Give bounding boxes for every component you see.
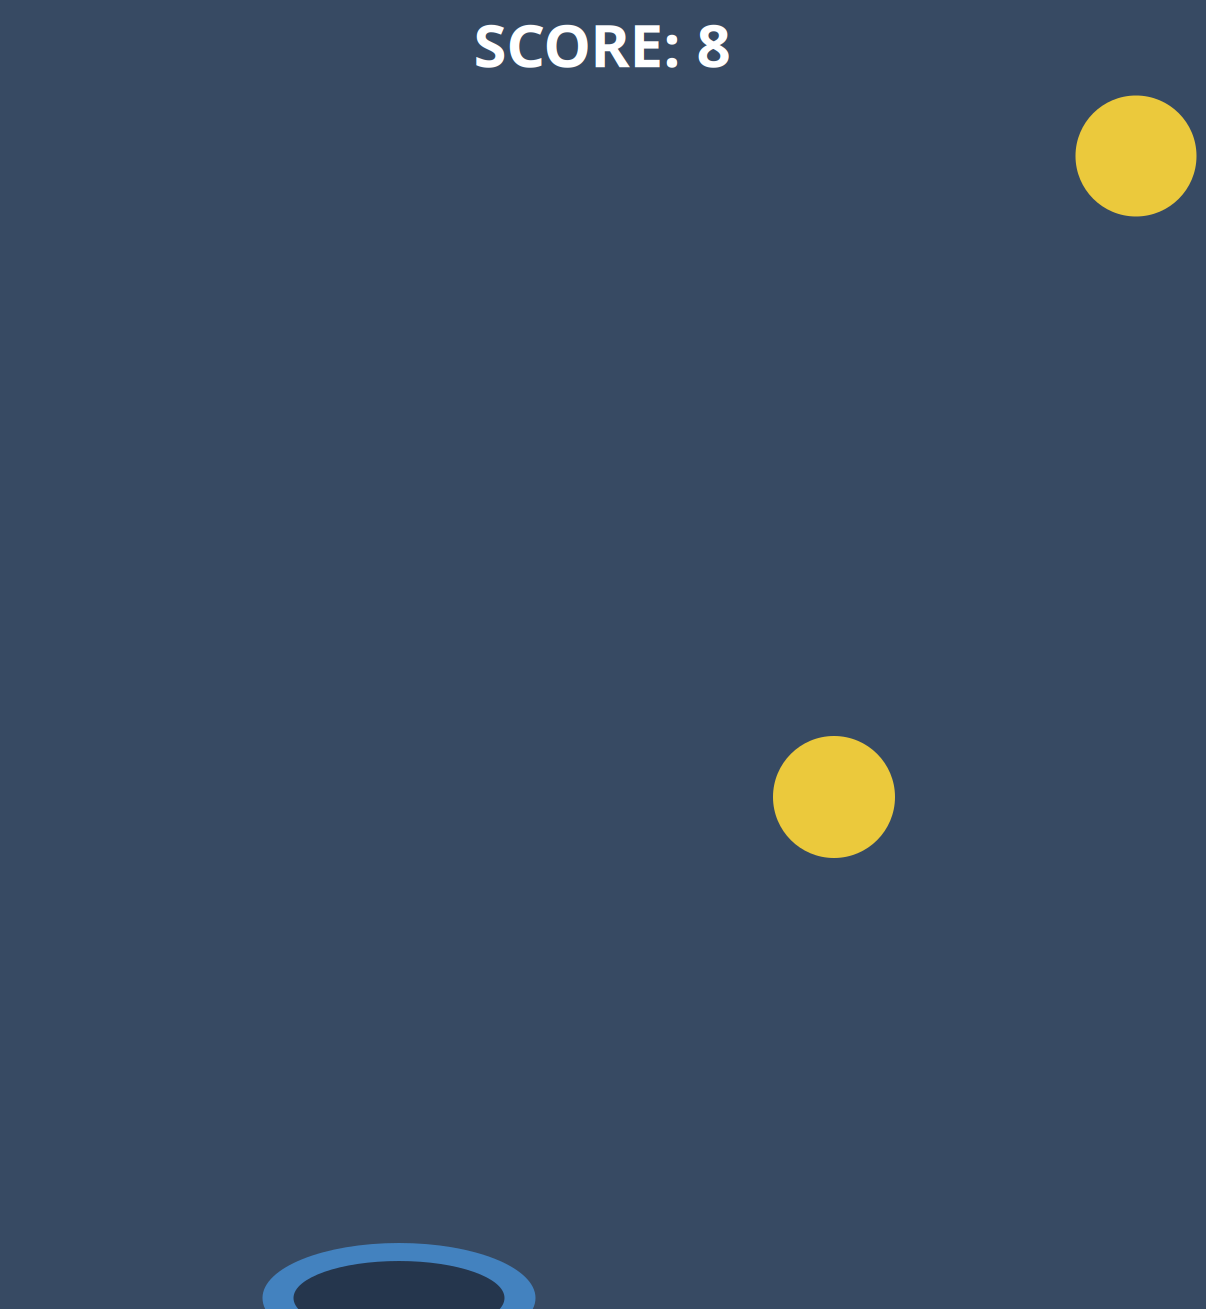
button[interactable]: Throw ball xyxy=(0,0,1206,1309)
staticText: SCORE: 8 xyxy=(473,4,730,84)
